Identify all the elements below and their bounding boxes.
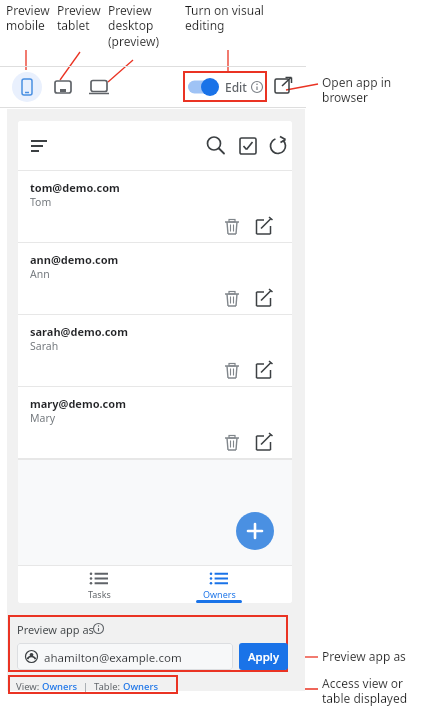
button[interactable]: Refresh: [266, 134, 290, 158]
button[interactable]: mary@demo.com: [18, 387, 292, 459]
staticText: Sarah: [30, 339, 59, 353]
button[interactable]: Preview desktop: [84, 72, 114, 102]
button[interactable]: sarah@demo.com: [18, 315, 292, 387]
button[interactable]: Delete: [220, 431, 244, 455]
button[interactable]: Search: [204, 134, 228, 158]
button[interactable]: ahamilton@example.com: [17, 643, 233, 670]
staticText: View:: [16, 680, 42, 693]
staticText: Owners: [203, 588, 236, 600]
staticText: Owners: [42, 680, 78, 693]
staticText: Edit: [225, 79, 247, 95]
button[interactable]: Delete: [220, 359, 244, 383]
staticText: mary@demo.com: [30, 396, 126, 411]
staticText: Preview app as: [322, 648, 406, 664]
staticText: Apply: [248, 649, 279, 665]
staticText: Turn on visual editing: [185, 2, 264, 34]
button[interactable]: Edit: [252, 431, 276, 455]
button[interactable]: Open app in browser: [272, 74, 298, 100]
button[interactable]: Add: [236, 512, 274, 550]
staticText: tom@demo.com: [30, 180, 120, 195]
button[interactable]: Apply: [239, 643, 288, 670]
staticText: Open app in browser: [322, 74, 392, 106]
button[interactable]: Select: [236, 134, 260, 158]
button[interactable]: Menu: [28, 134, 52, 158]
button[interactable]: Edit: [188, 76, 263, 97]
button[interactable]: Delete: [220, 215, 244, 239]
staticText: ann@demo.com: [30, 252, 119, 267]
staticText: |: [78, 680, 94, 693]
staticText: Mary: [30, 411, 56, 425]
staticText: Ann: [30, 267, 50, 281]
staticText: sarah@demo.com: [30, 324, 128, 339]
staticText: Preview app as: [17, 622, 94, 637]
button[interactable]: Owners: [185, 571, 253, 600]
staticText: Owners: [123, 680, 159, 693]
staticText: Preview desktop (preview): [108, 2, 159, 50]
staticText: Preview mobile: [6, 2, 50, 34]
staticText: ahamilton@example.com: [44, 650, 182, 666]
staticText: Tasks: [88, 588, 111, 600]
button[interactable]: Edit: [252, 287, 276, 311]
button[interactable]: Edit: [252, 359, 276, 383]
staticText: Table:: [94, 680, 123, 693]
button[interactable]: Preview tablet: [48, 72, 78, 102]
staticText: Access view or table displayed: [322, 675, 408, 707]
button[interactable]: Edit: [252, 215, 276, 239]
staticText: Tom: [30, 195, 52, 209]
button[interactable]: Tasks: [65, 571, 133, 600]
button[interactable]: ann@demo.com: [18, 243, 292, 315]
staticText: Preview tablet: [57, 2, 101, 34]
button[interactable]: tom@demo.com: [18, 171, 292, 243]
button[interactable]: Preview mobile: [12, 72, 42, 102]
button[interactable]: Delete: [220, 287, 244, 311]
